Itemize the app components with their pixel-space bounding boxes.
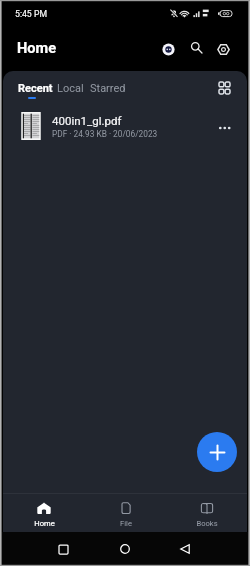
button[interactable]: Starred [86,80,130,97]
button[interactable]: Books [166,502,247,528]
button[interactable]: Account [157,38,179,60]
staticText: Local [57,82,84,95]
button[interactable]: Recent [14,80,57,97]
staticText: 400in1_gl.pdf [52,114,122,127]
button[interactable]: File [85,502,166,528]
button[interactable]: Local [53,80,88,97]
staticText: Home [17,39,57,56]
button[interactable]: Home [3,502,85,528]
button[interactable]: Recents [51,537,75,561]
button[interactable]: Home [113,537,137,561]
button[interactable]: Search [184,36,206,58]
button[interactable]: 400in1_gl.pdf [3,104,247,148]
button[interactable]: Grid view [213,77,235,99]
button[interactable]: Add [197,432,237,472]
staticText: Starred [90,82,126,95]
staticText: 5:45 PM [15,9,47,19]
button[interactable]: More options [214,117,236,139]
staticText: PDF · 24.93 KB · 20/06/2023 [52,129,158,139]
staticText: Books [196,519,218,528]
staticText: Recent [18,82,53,95]
button[interactable]: Back [173,537,197,561]
staticText: File [120,519,132,528]
button[interactable]: Settings [212,38,234,60]
staticText: Home [34,519,55,528]
